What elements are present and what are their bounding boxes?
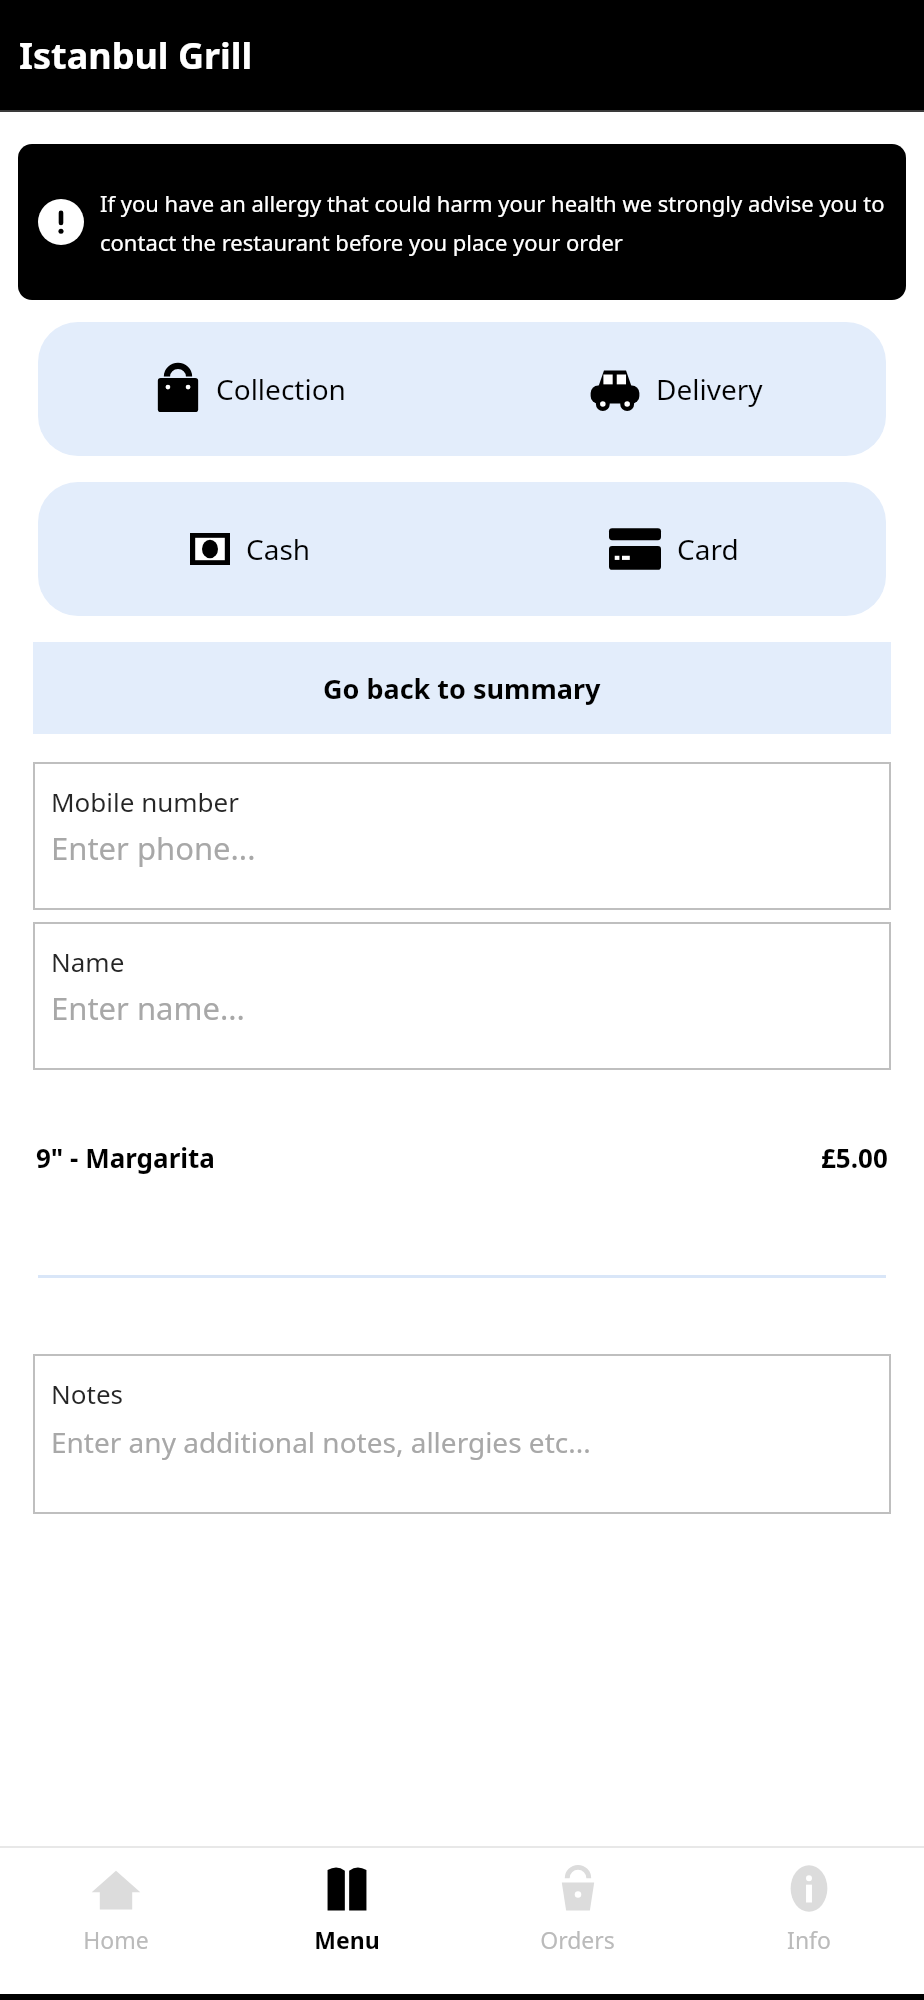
- staticText: If you have an allergy that could harm y…: [100, 188, 900, 257]
- button[interactable]: Home: [0, 1848, 231, 1994]
- other: Collection: [154, 365, 202, 413]
- staticText: Collection: [216, 370, 346, 408]
- button[interactable]: Name: [33, 922, 891, 1070]
- staticText: Orders: [540, 1924, 615, 1955]
- other: Card: [609, 523, 661, 575]
- staticText: Name: [51, 944, 125, 979]
- staticText: Enter name...: [51, 987, 245, 1029]
- button[interactable]: Mobile number: [33, 762, 891, 910]
- button[interactable]: Go back to summary: [33, 642, 891, 734]
- button[interactable]: Info: [693, 1848, 924, 1994]
- button[interactable]: Delivery: [462, 322, 886, 456]
- other: Orders: [551, 1862, 605, 1916]
- button[interactable]: Card: [462, 482, 886, 616]
- button[interactable]: Notes: [33, 1354, 891, 1514]
- staticText: Enter phone...: [51, 827, 256, 869]
- staticText: £5.00: [821, 1140, 888, 1175]
- staticText: Notes: [51, 1376, 123, 1411]
- staticText: Enter any additional notes, allergies et…: [51, 1423, 591, 1461]
- other: Info: [782, 1862, 836, 1916]
- staticText: Card: [677, 530, 739, 568]
- button[interactable]: Orders: [462, 1848, 693, 1994]
- staticText: Delivery: [656, 370, 763, 408]
- button[interactable]: Collection: [38, 322, 462, 456]
- other: Menu: [320, 1862, 374, 1916]
- other: Home: [89, 1862, 143, 1916]
- staticText: Home: [83, 1924, 149, 1955]
- other: Delivery: [586, 360, 644, 418]
- staticText: Mobile number: [51, 784, 239, 819]
- staticText: Info: [787, 1924, 831, 1955]
- button[interactable]: Allergy warning: [18, 144, 906, 300]
- other: Allergy warning: [38, 199, 84, 245]
- staticText: Istanbul Grill: [19, 31, 253, 80]
- button[interactable]: Menu: [231, 1848, 462, 1994]
- staticText: Go back to summary: [323, 670, 601, 707]
- staticText: Menu: [314, 1924, 380, 1955]
- staticText: Cash: [246, 530, 311, 568]
- other: Cash: [190, 529, 230, 569]
- button[interactable]: 9" - Margarita: [36, 1140, 888, 1175]
- button[interactable]: Cash: [38, 482, 462, 616]
- staticText: 9" - Margarita: [36, 1140, 215, 1175]
